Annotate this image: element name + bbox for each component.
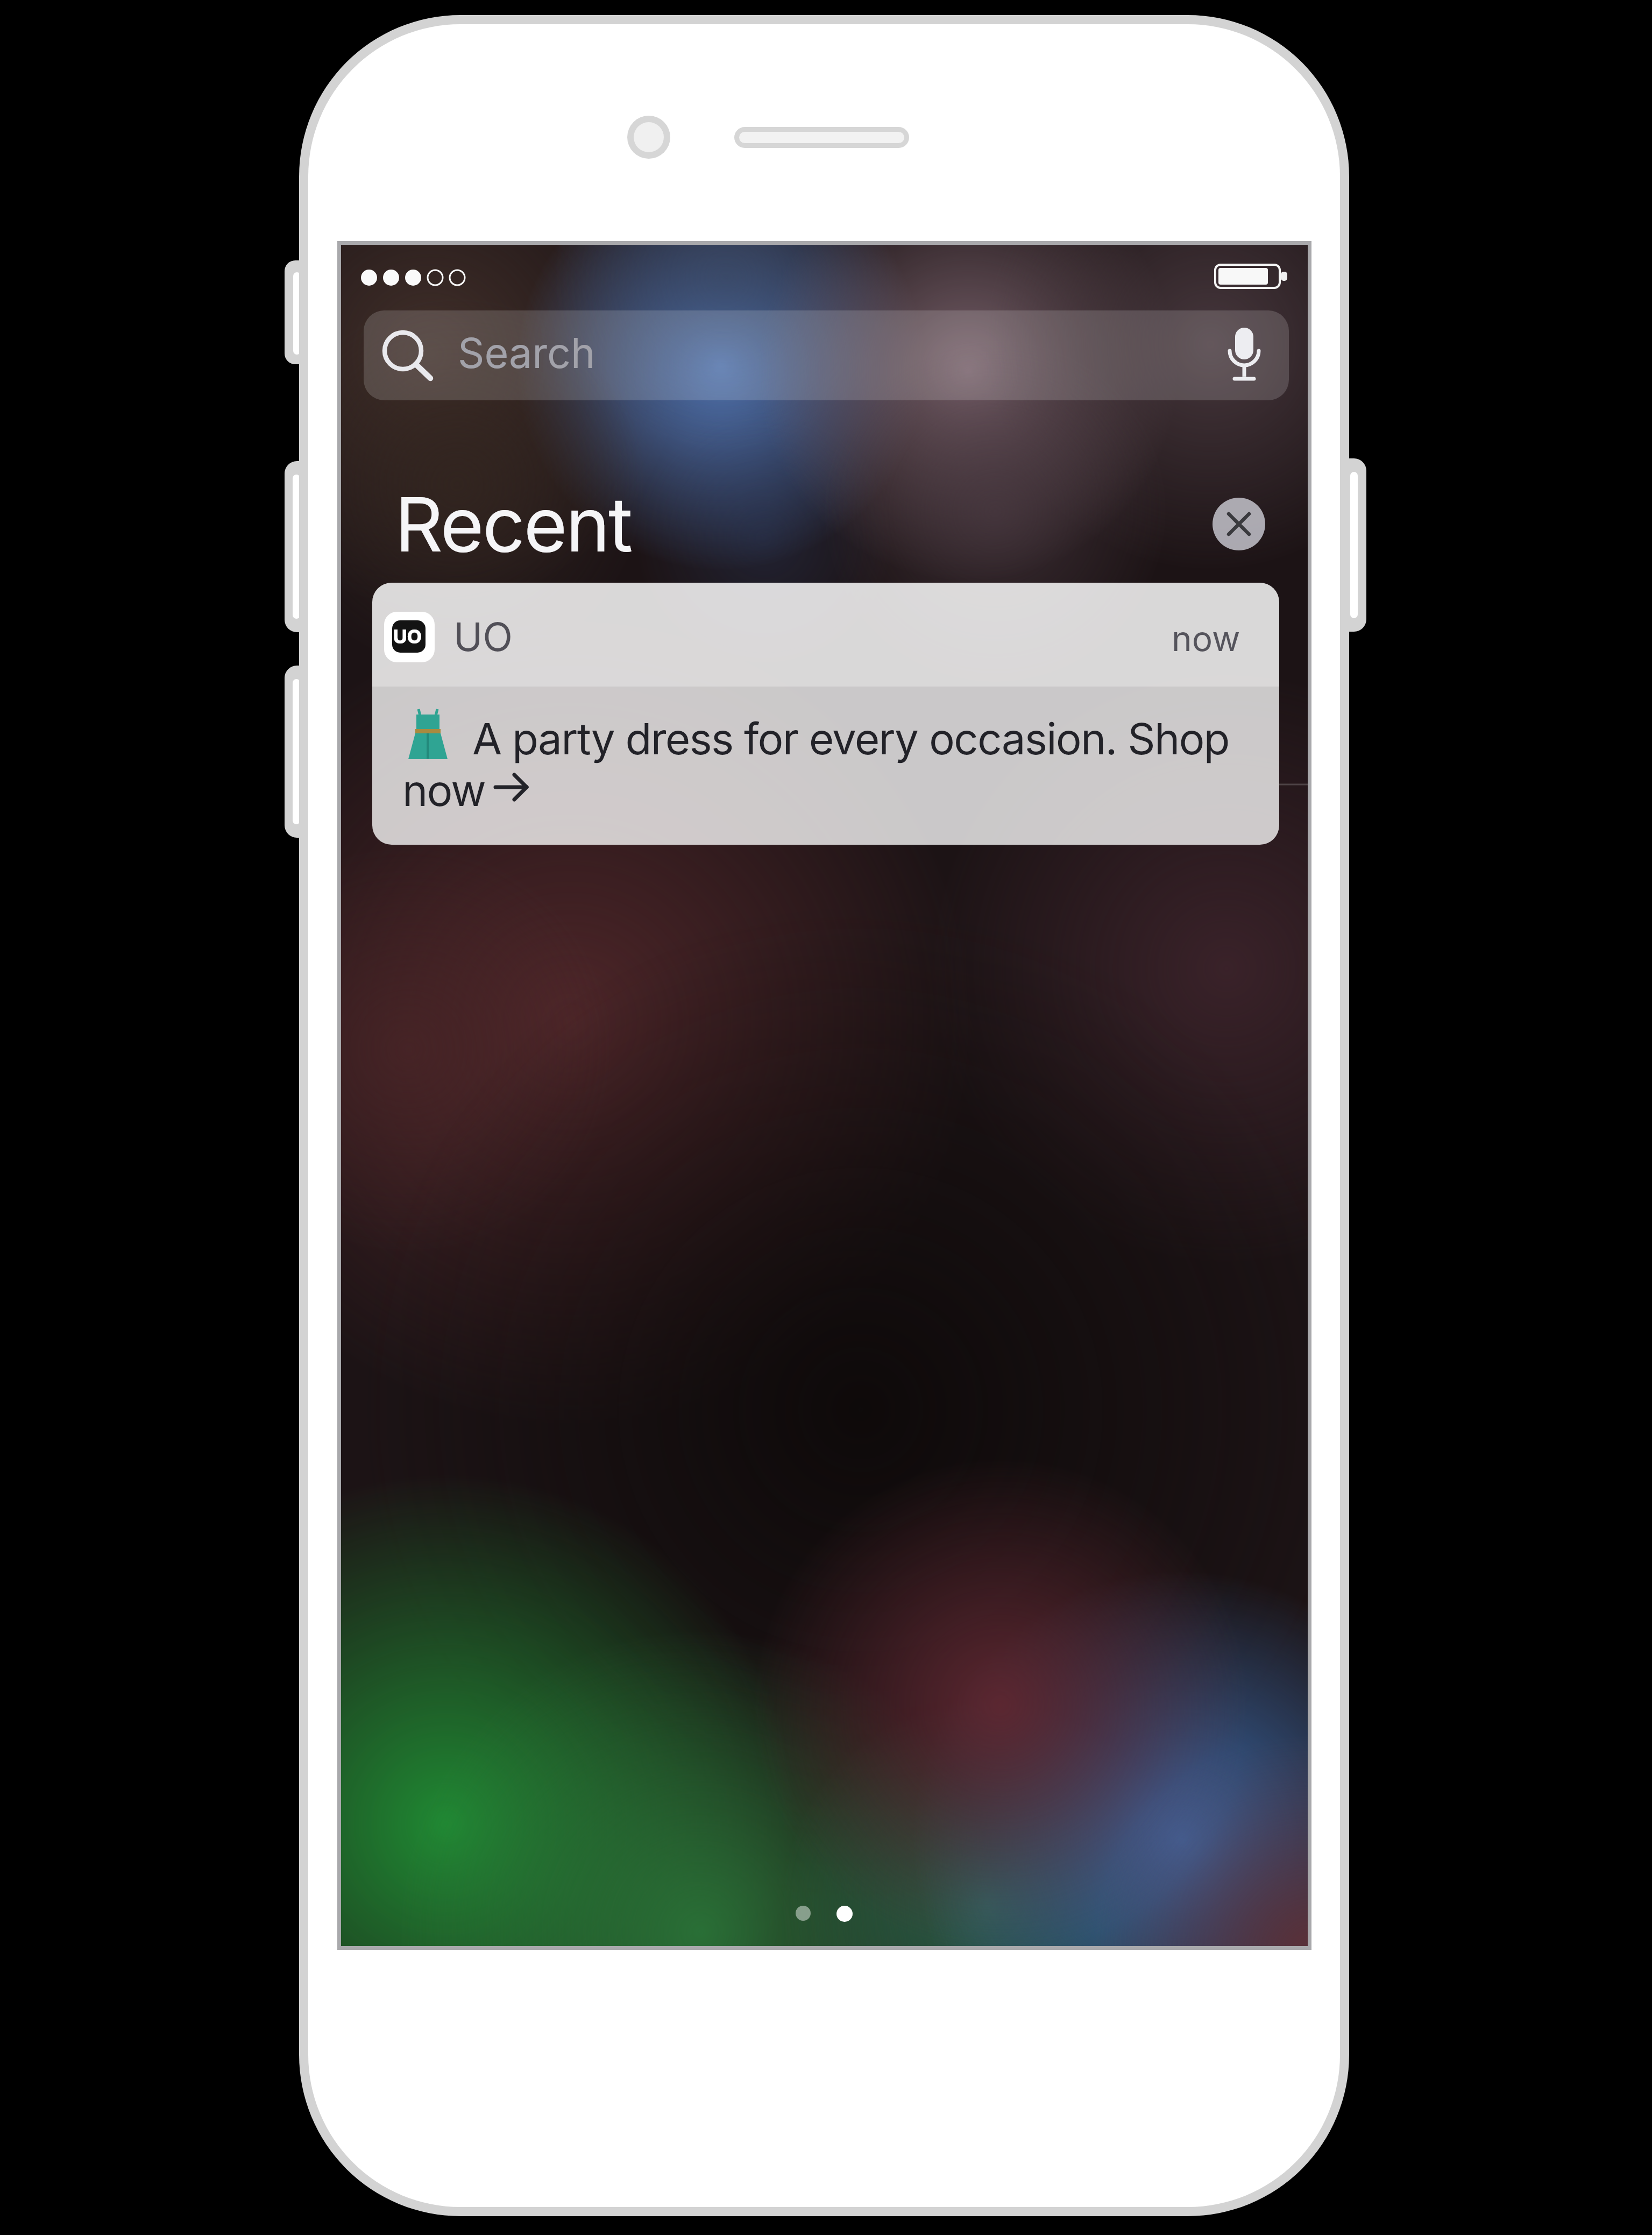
staticText: now — [1172, 618, 1240, 659]
staticText: Search — [458, 328, 595, 378]
button[interactable] — [1213, 498, 1265, 550]
staticText: UO — [393, 625, 422, 648]
staticText: now — [402, 764, 485, 816]
button[interactable] — [372, 583, 1279, 845]
staticText: A party dress for every occasion. Shop — [472, 712, 1229, 765]
button[interactable] — [364, 310, 1289, 400]
staticText: UO — [453, 613, 513, 660]
staticText: Recent — [395, 479, 632, 569]
